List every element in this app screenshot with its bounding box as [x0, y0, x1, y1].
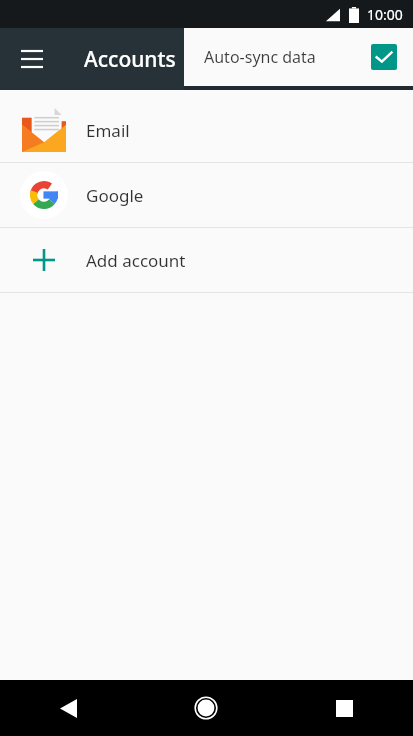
staticText: Google	[86, 184, 144, 207]
staticText: Email	[86, 119, 130, 142]
other: Auto-sync data enabled	[371, 44, 397, 70]
staticText: Auto-sync data	[204, 46, 316, 68]
staticText: Add account	[86, 249, 186, 272]
button[interactable]: Email	[0, 98, 413, 162]
staticText: Accounts	[84, 45, 176, 74]
staticText: 10:00	[367, 5, 403, 24]
button[interactable]: Back	[0, 680, 137, 736]
button[interactable]: Google	[0, 163, 413, 227]
button[interactable]: Add account	[0, 228, 413, 292]
button[interactable]: Open navigation drawer	[8, 35, 56, 83]
button[interactable]: Auto-sync data	[184, 28, 413, 86]
button[interactable]: Recent apps	[275, 680, 413, 736]
button[interactable]: Home	[137, 680, 275, 736]
